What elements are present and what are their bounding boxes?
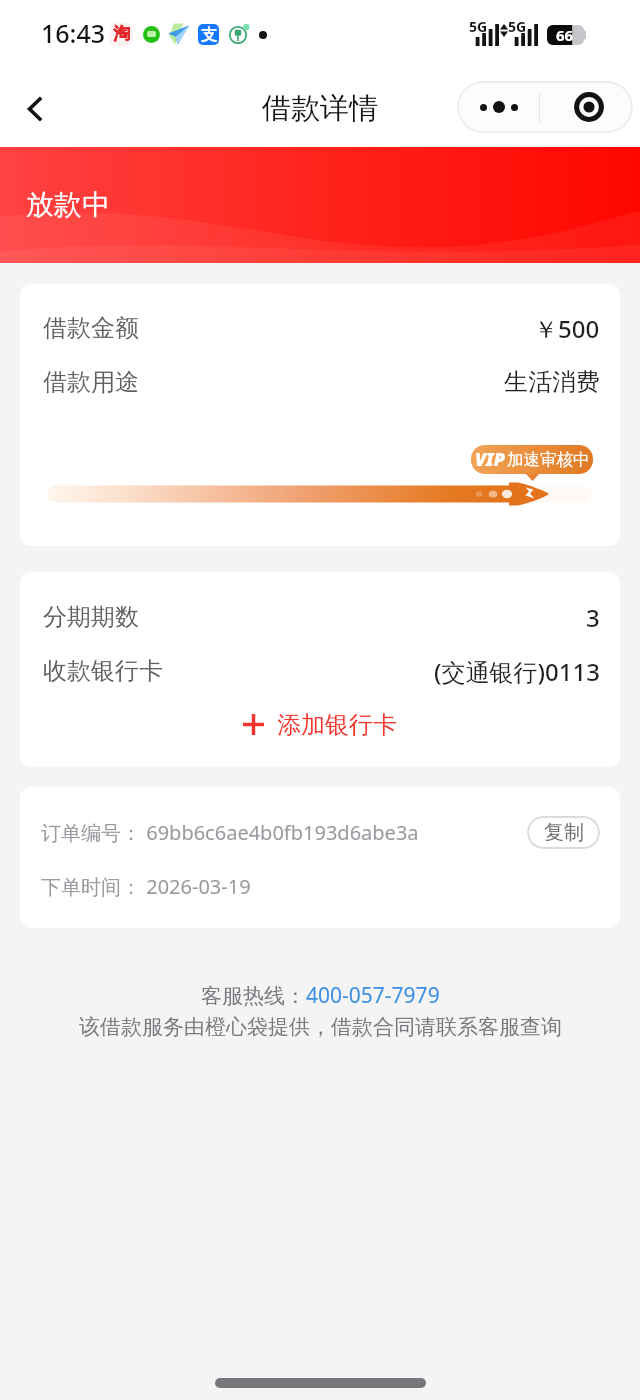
staticText: 下单时间： 2026-03-19: [41, 873, 251, 900]
staticText: 借款金额: [43, 313, 139, 343]
staticText: 该借款服务由橙心袋提供，借款合同请联系客服查询: [79, 1014, 562, 1040]
staticText: 淘: [113, 23, 130, 44]
button[interactable]: Back: [8, 81, 64, 137]
staticText: 放款中: [26, 187, 110, 222]
staticText: 分期期数: [43, 602, 139, 632]
staticText: 添加银行卡: [277, 710, 397, 740]
staticText: ￥500: [534, 312, 600, 345]
staticText: 复制: [544, 820, 584, 845]
button[interactable]: 复制: [527, 816, 600, 849]
staticText: 加速审核中: [507, 449, 590, 470]
button[interactable]: Close mini program: [545, 81, 633, 133]
staticText: 16:43: [41, 16, 106, 50]
staticText: (交通银行)0113: [434, 655, 600, 688]
staticText: 支: [201, 25, 217, 45]
button[interactable]: 400-057-7979: [306, 981, 440, 1010]
staticText: 借款详情: [262, 90, 378, 127]
staticText: 客服热线：: [201, 983, 306, 1009]
button[interactable]: 添加银行卡: [20, 698, 620, 751]
staticText: 订单编号： 69bb6c6ae4b0fb193d6abe3a: [41, 819, 419, 846]
staticText: 收款银行卡: [43, 656, 163, 686]
staticText: 生活消费: [504, 367, 600, 397]
staticText: 5G: [508, 17, 527, 36]
staticText: 66: [556, 25, 574, 45]
staticText: 3: [586, 601, 600, 634]
staticText: 5G: [469, 17, 488, 36]
staticText: 借款用途: [43, 367, 139, 397]
button[interactable]: More options: [457, 81, 541, 133]
staticText: VIP: [475, 447, 505, 472]
